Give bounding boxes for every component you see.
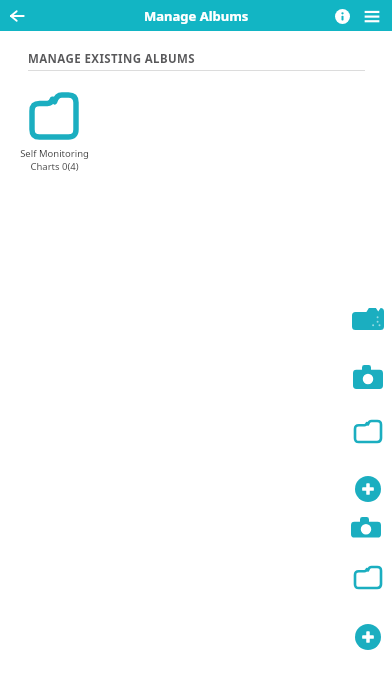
button[interactable]: Self Monitoring Charts 0(4) — [12, 90, 96, 173]
button[interactable]: Menu — [358, 2, 386, 30]
button[interactable]: Back — [0, 0, 34, 31]
staticText: MANAGE EXISTING ALBUMS — [28, 51, 196, 67]
button[interactable]: Import album — [349, 300, 387, 338]
button[interactable]: Information — [328, 2, 356, 30]
button[interactable]: Take photo — [349, 510, 383, 544]
button[interactable]: Take photo — [349, 357, 387, 395]
button[interactable]: Open folder — [349, 412, 387, 450]
staticText: Self Monitoring Charts 0(4) — [20, 147, 89, 173]
button[interactable]: Add album — [349, 618, 387, 656]
button[interactable]: Add album — [349, 470, 387, 508]
staticText: Manage Albums — [144, 7, 249, 25]
button[interactable]: Open folder — [349, 558, 387, 596]
